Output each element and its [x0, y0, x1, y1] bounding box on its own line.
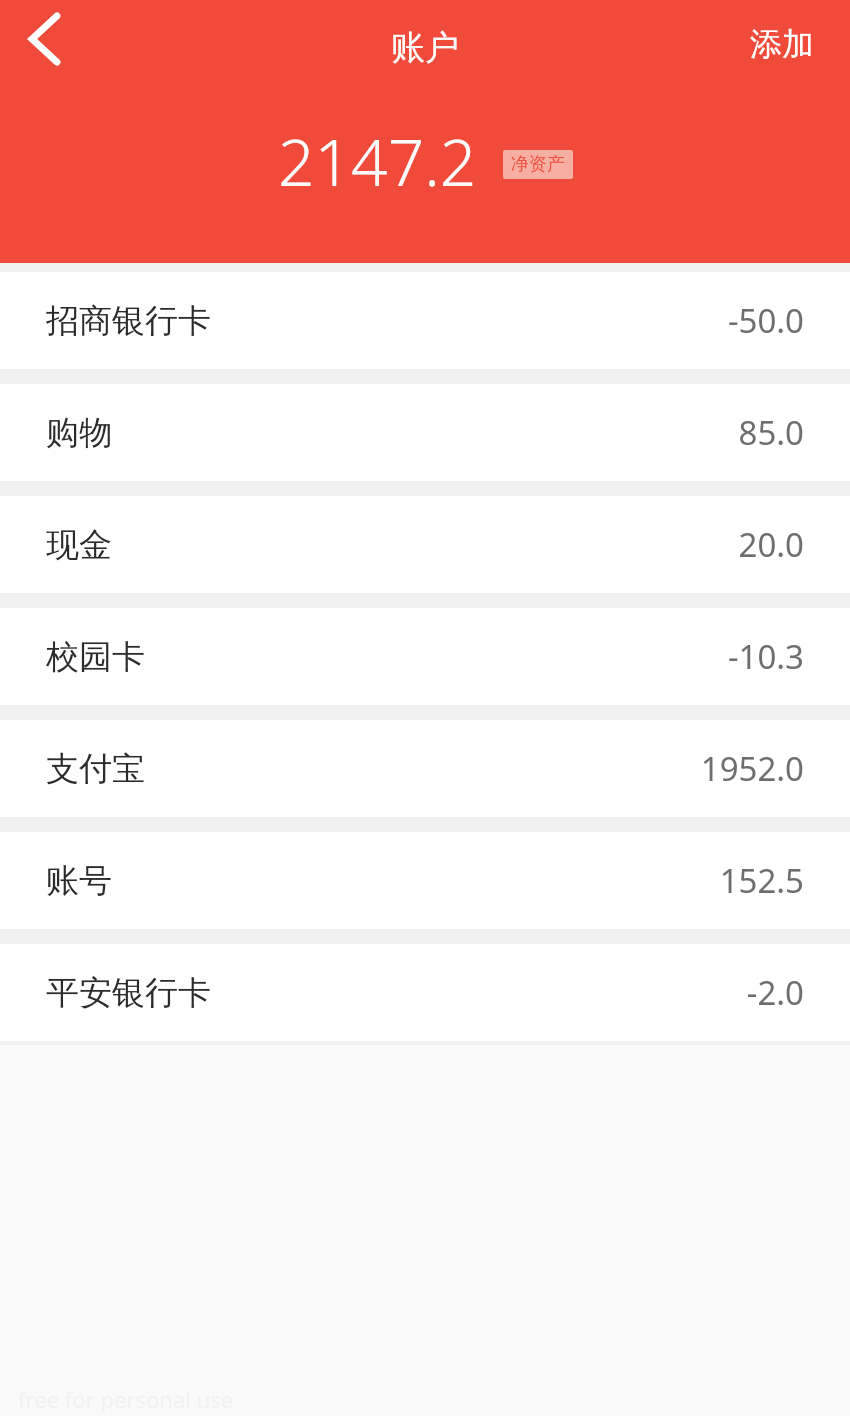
- staticText: 85.0: [738, 410, 804, 455]
- button[interactable]: 添加: [742, 12, 822, 76]
- staticText: 2147.2: [278, 118, 477, 205]
- staticText: 账户: [391, 26, 459, 69]
- button[interactable]: 招商银行卡: [0, 272, 850, 369]
- staticText: 添加: [750, 24, 814, 64]
- button[interactable]: 现金: [0, 496, 850, 593]
- staticText: 净资产: [511, 153, 565, 176]
- button[interactable]: 购物: [0, 384, 850, 481]
- staticText: 招商银行卡: [46, 300, 211, 342]
- button[interactable]: 平安银行卡: [0, 944, 850, 1041]
- staticText: 校园卡: [46, 636, 145, 678]
- staticText: 152.5: [719, 858, 804, 903]
- button[interactable]: 支付宝: [0, 720, 850, 817]
- staticText: 现金: [46, 524, 112, 566]
- staticText: 平安银行卡: [46, 972, 211, 1014]
- staticText: 账号: [46, 860, 112, 902]
- staticText: 购物: [46, 412, 112, 454]
- button[interactable]: 校园卡: [0, 608, 850, 705]
- staticText: -50.0: [727, 298, 804, 343]
- staticText: 20.0: [738, 522, 804, 567]
- staticText: 1952.0: [700, 746, 804, 791]
- button[interactable]: 账号: [0, 832, 850, 929]
- staticText: -2.0: [746, 970, 804, 1015]
- button[interactable]: Back: [14, 8, 76, 70]
- staticText: -10.3: [727, 634, 804, 679]
- staticText: 支付宝: [46, 748, 145, 790]
